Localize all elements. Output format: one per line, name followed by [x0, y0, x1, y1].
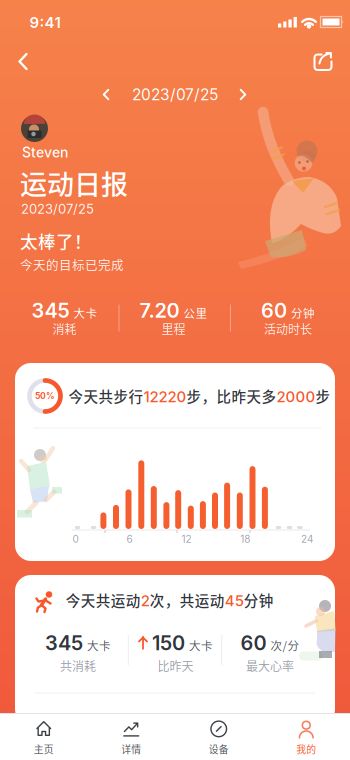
staticText: 设备: [209, 742, 229, 756]
button[interactable]: Next day: [229, 80, 257, 108]
staticText: 分钟: [244, 589, 274, 610]
staticText: 7.20: [139, 298, 179, 323]
staticText: 步: [316, 385, 331, 406]
staticText: 60: [240, 631, 266, 655]
staticText: 步，比昨天多: [187, 385, 277, 406]
staticText: 2000: [277, 388, 316, 406]
staticText: 太棒了！: [20, 228, 92, 253]
staticText: 共消耗: [60, 657, 96, 674]
staticText: 大卡: [73, 304, 97, 321]
staticText: 2023/07/25: [132, 85, 218, 104]
staticText: 今天共步行: [69, 385, 144, 406]
staticText: 50%: [35, 391, 55, 401]
staticText: 今天共运动: [66, 589, 141, 610]
staticText: 大卡: [189, 637, 213, 654]
staticText: 公里: [183, 304, 207, 321]
staticText: 次，共运动: [150, 589, 225, 610]
staticText: 我的: [296, 742, 316, 756]
button[interactable]: Previous day: [92, 80, 120, 108]
staticText: 今天的目标已完成: [20, 255, 124, 274]
staticText: 12: [181, 533, 191, 545]
staticText: 2: [141, 592, 150, 610]
staticText: 6: [126, 533, 132, 545]
button[interactable]: 主页: [0, 714, 87, 760]
staticText: 2023/07/25: [21, 201, 94, 217]
staticText: 12220: [144, 388, 187, 406]
staticText: 345: [31, 298, 69, 323]
staticText: 活动时长: [264, 320, 312, 337]
staticText: 9:41: [29, 13, 60, 31]
staticText: 消耗: [52, 320, 76, 337]
button[interactable]: Back: [6, 44, 40, 78]
staticText: 345: [45, 631, 83, 655]
staticText: 大卡: [87, 637, 111, 654]
staticText: 45: [225, 592, 244, 610]
staticText: 运动日报: [20, 163, 128, 203]
staticText: 里程: [161, 320, 185, 337]
button[interactable]: 详情: [87, 714, 175, 760]
staticText: 分钟: [291, 304, 315, 321]
staticText: 24: [301, 533, 313, 545]
staticText: 详情: [121, 742, 141, 756]
staticText: 18: [240, 533, 250, 545]
staticText: 150: [152, 631, 185, 655]
staticText: Steven: [22, 144, 68, 161]
staticText: 主页: [34, 742, 54, 756]
button[interactable]: 我的: [262, 714, 350, 760]
staticText: 次/分: [270, 637, 299, 654]
staticText: 比昨天: [157, 657, 193, 674]
button[interactable]: 设备: [175, 714, 262, 760]
staticText: 60: [261, 298, 287, 323]
staticText: 最大心率: [246, 657, 294, 674]
staticText: 0: [72, 533, 78, 545]
button[interactable]: Share: [310, 48, 336, 74]
